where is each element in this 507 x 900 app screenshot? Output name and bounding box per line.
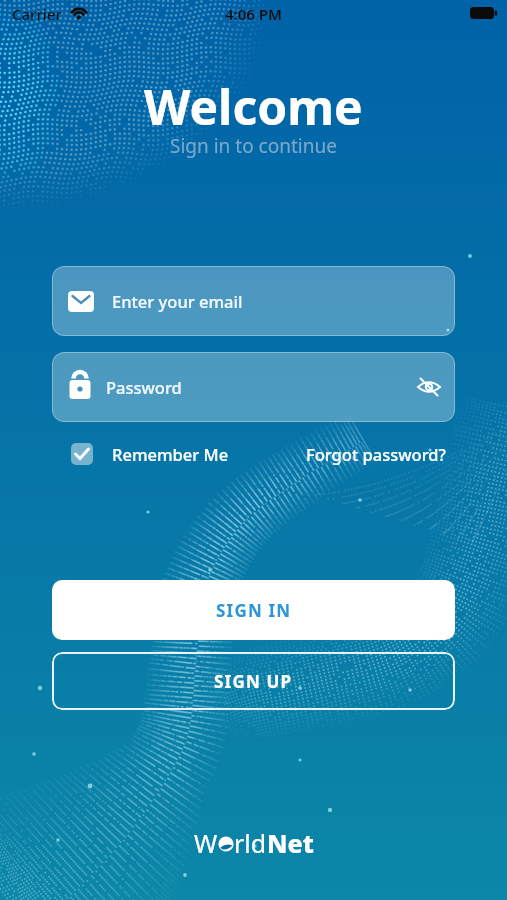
staticText: Remember Me xyxy=(112,443,229,465)
staticText: 4:06 PM xyxy=(225,4,282,24)
button[interactable] xyxy=(415,373,443,401)
staticText: Net xyxy=(267,826,314,858)
staticText: Password xyxy=(106,376,182,398)
staticText: SIGN UP xyxy=(214,670,293,693)
staticText: Welcome xyxy=(144,74,363,139)
staticText: rld xyxy=(234,826,267,858)
button[interactable]: Forgot password? xyxy=(306,443,446,465)
staticText: Enter your email xyxy=(112,290,243,312)
staticText: W xyxy=(194,826,218,858)
staticText: SIGN IN xyxy=(216,599,292,622)
button[interactable]: SIGN UP xyxy=(52,652,455,710)
button[interactable] xyxy=(71,443,93,465)
staticText: Carrier xyxy=(12,4,62,24)
button[interactable]: Password xyxy=(52,352,455,422)
staticText: Sign in to continue xyxy=(170,133,337,159)
button[interactable]: SIGN IN xyxy=(52,580,455,640)
button[interactable]: Enter your email xyxy=(52,266,455,336)
